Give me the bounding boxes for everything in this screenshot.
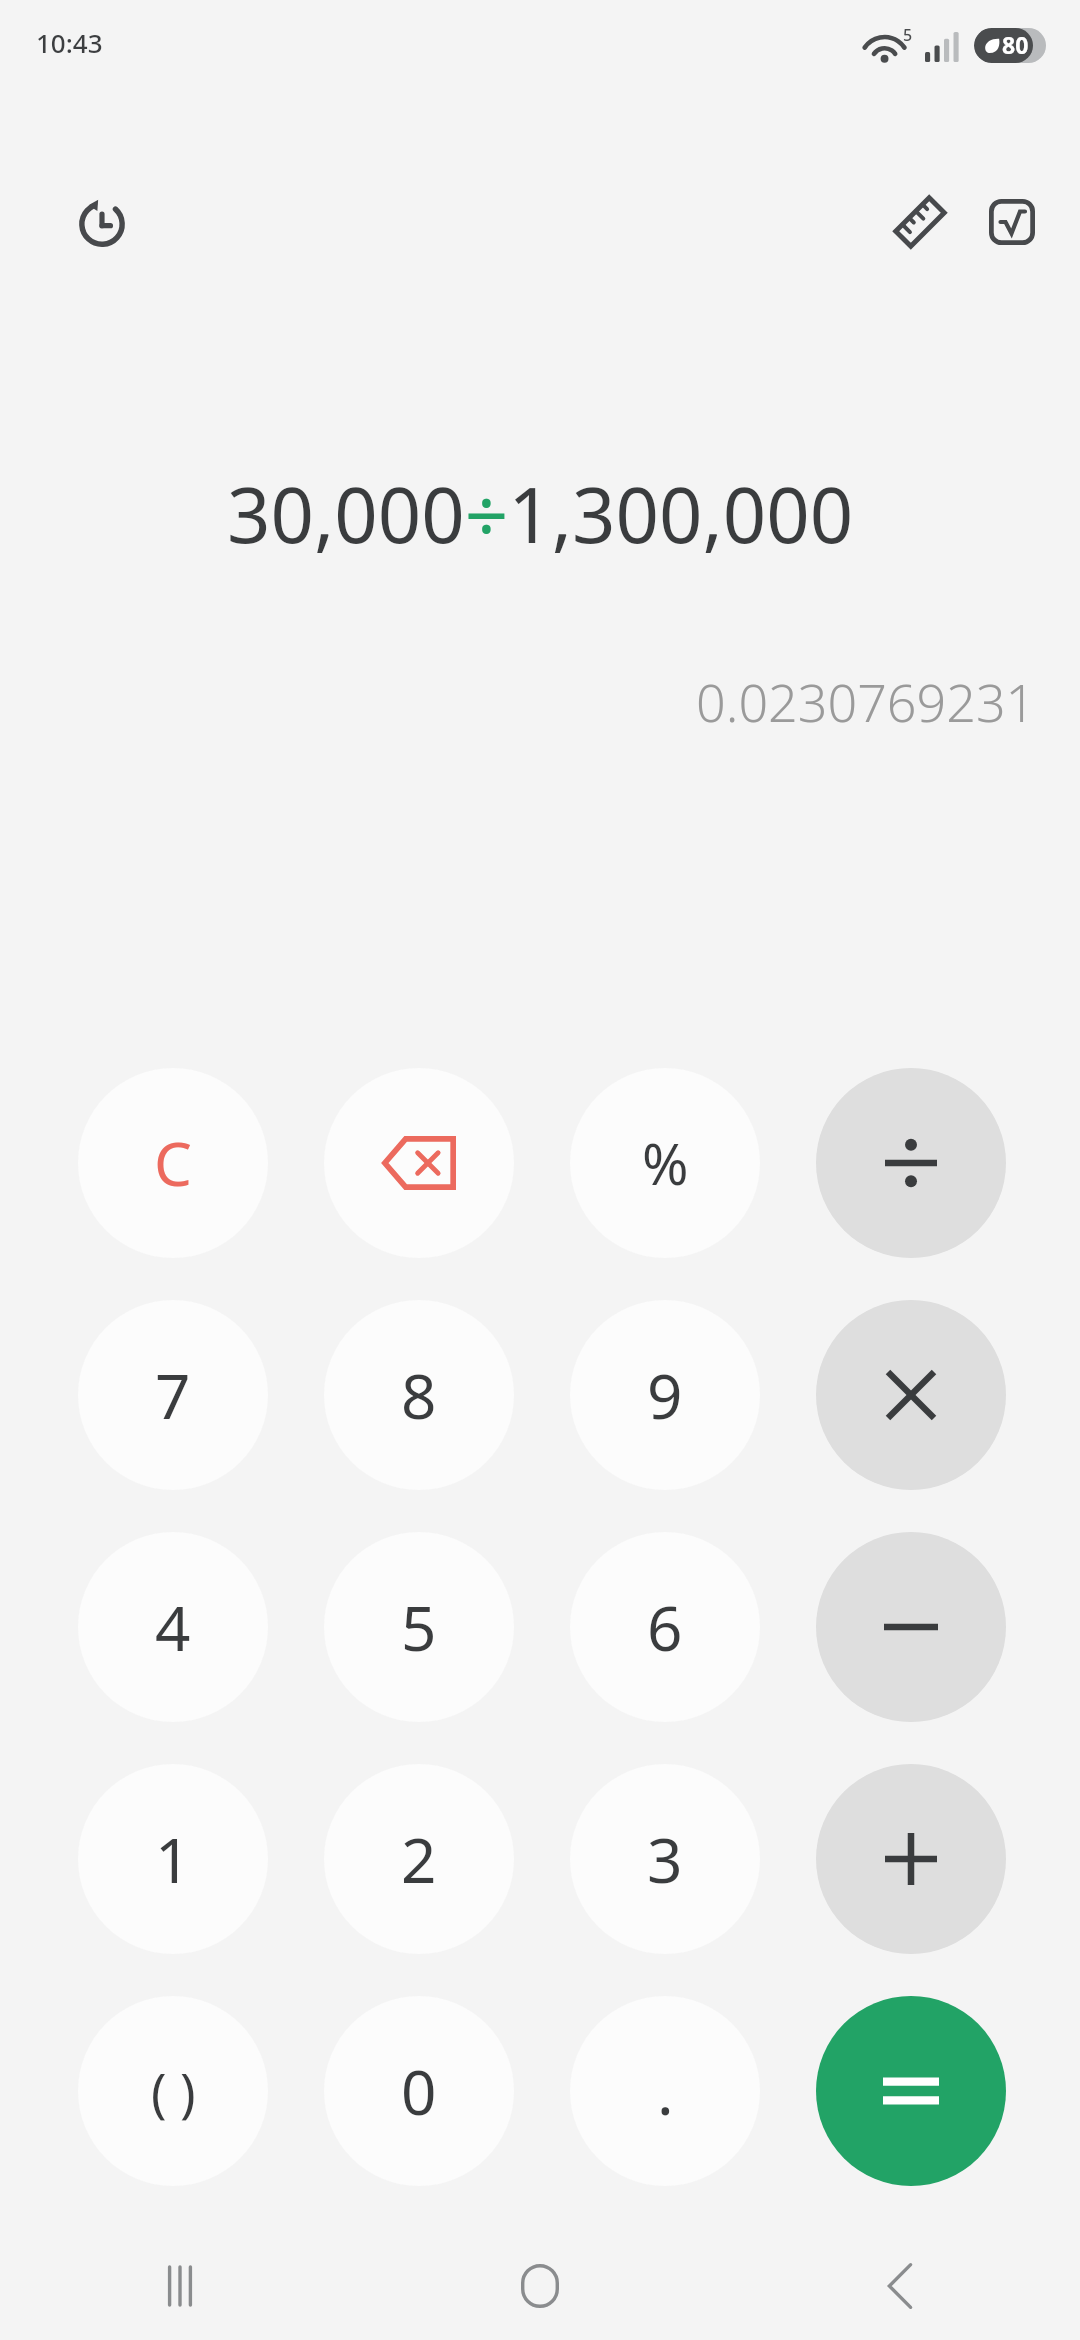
button[interactable]: 9: [570, 1300, 760, 1490]
button[interactable]: Minus: [816, 1532, 1006, 1722]
button[interactable]: 8: [324, 1300, 514, 1490]
staticText: 8: [401, 1353, 437, 1437]
button[interactable]: Recents: [0, 2232, 360, 2340]
staticText: 9: [647, 1353, 683, 1437]
button[interactable]: Multiply: [816, 1300, 1006, 1490]
button[interactable]: 3: [570, 1764, 760, 1954]
staticText: 1: [155, 1817, 191, 1901]
staticText: 6: [647, 1585, 683, 1669]
staticText: .: [657, 2049, 674, 2133]
staticText: 10:43: [36, 25, 103, 60]
staticText: 5: [903, 24, 913, 46]
staticText: %: [642, 1125, 689, 1201]
button[interactable]: History: [60, 180, 144, 264]
button[interactable]: 6: [570, 1532, 760, 1722]
button[interactable]: 2: [324, 1764, 514, 1954]
staticText: ( ): [151, 2056, 196, 2127]
staticText: C: [154, 1122, 192, 1204]
button[interactable]: C: [78, 1068, 268, 1258]
button[interactable]: Home: [360, 2232, 720, 2340]
button[interactable]: Equals: [816, 1996, 1006, 2186]
button[interactable]: .: [570, 1996, 760, 2186]
button[interactable]: 1: [78, 1764, 268, 1954]
button[interactable]: Plus: [816, 1764, 1006, 1954]
button[interactable]: Scientific calculator: [970, 180, 1054, 264]
button[interactable]: Unit converter: [878, 180, 962, 264]
staticText: 0.0230769231: [696, 666, 1036, 737]
button[interactable]: Divide: [816, 1068, 1006, 1258]
staticText: 3: [647, 1817, 683, 1901]
button[interactable]: 4: [78, 1532, 268, 1722]
staticText: 0: [401, 2049, 437, 2133]
button[interactable]: 5: [324, 1532, 514, 1722]
button[interactable]: 7: [78, 1300, 268, 1490]
button[interactable]: Back: [720, 2232, 1080, 2340]
staticText: 80: [1002, 29, 1029, 60]
button[interactable]: Backspace: [324, 1068, 514, 1258]
button[interactable]: 0: [324, 1996, 514, 2186]
staticText: 30,000÷1,300,000: [227, 462, 854, 566]
button[interactable]: ( ): [78, 1996, 268, 2186]
staticText: 5: [401, 1585, 437, 1669]
staticText: 2: [401, 1817, 437, 1901]
button[interactable]: %: [570, 1068, 760, 1258]
staticText: 7: [155, 1353, 191, 1437]
staticText: 4: [155, 1585, 191, 1669]
